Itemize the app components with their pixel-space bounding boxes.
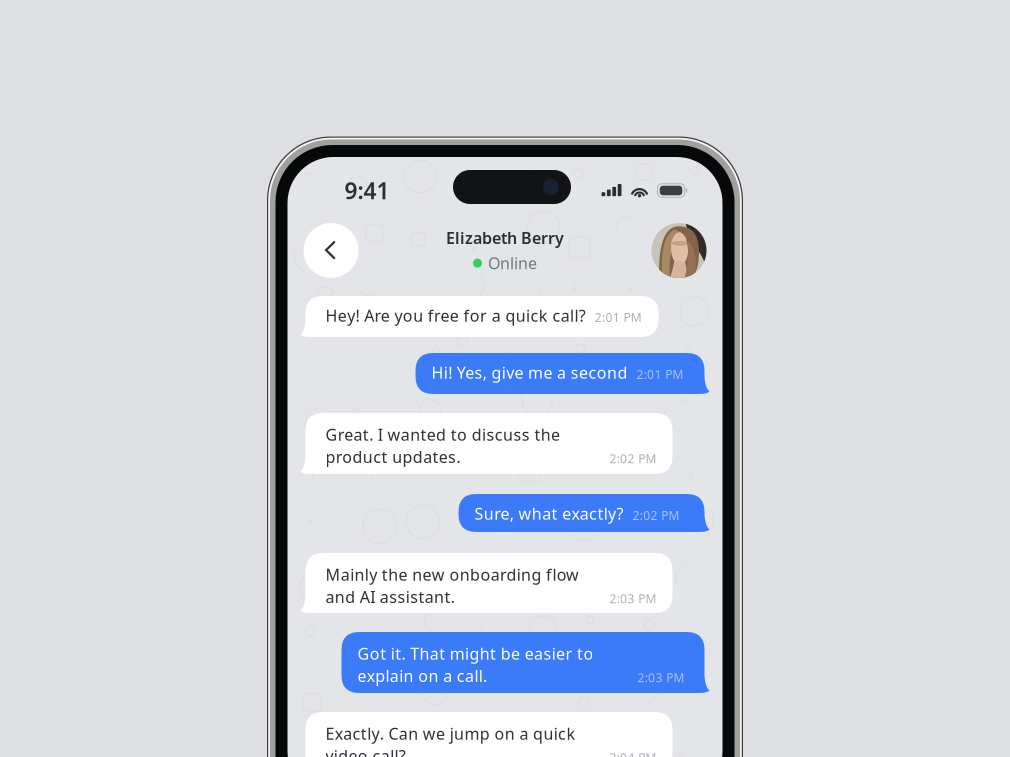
staticText: 2:01 PM — [636, 366, 683, 382]
staticText: and AI assistant. — [325, 586, 455, 607]
button[interactable]: Back — [303, 223, 358, 278]
staticText: Elizabeth Berry — [446, 227, 564, 248]
staticText: 2:04 PM — [609, 750, 656, 757]
staticText: Online — [488, 252, 537, 274]
staticText: product updates. — [325, 446, 460, 467]
staticText: 2:02 PM — [632, 507, 679, 523]
staticText: explain on a call. — [357, 665, 487, 686]
staticText: 2:01 PM — [595, 309, 642, 325]
staticText: 2:03 PM — [609, 591, 656, 606]
staticText: 2:02 PM — [609, 451, 656, 466]
staticText: Sure, what exactly? — [474, 503, 623, 524]
staticText: 2:03 PM — [637, 670, 684, 685]
staticText: Got it. That might be easier to — [357, 643, 593, 664]
staticText: video call? — [325, 745, 406, 757]
staticText: Hi! Yes, give me a second — [431, 362, 627, 383]
staticText: Great. I wanted to discuss the — [325, 424, 560, 445]
staticText: Mainly the new onboarding flow — [325, 564, 579, 585]
staticText: Hey! Are you free for a quick call? — [325, 305, 586, 326]
button[interactable]: Contact profile — [651, 223, 706, 278]
staticText: Exactly. Can we jump on a quick — [325, 723, 575, 744]
staticText: 9:41 — [344, 175, 389, 205]
